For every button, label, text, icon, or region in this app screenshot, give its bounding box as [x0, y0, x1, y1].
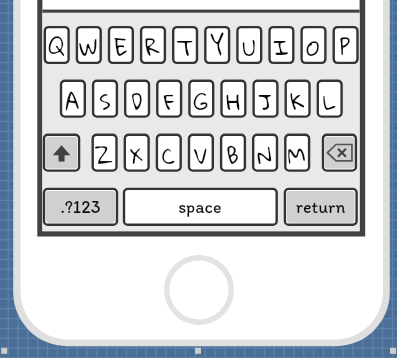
button[interactable]: J — [252, 80, 278, 118]
button[interactable]: Numbers and symbols — [43, 188, 118, 226]
button[interactable]: X — [124, 134, 150, 172]
button[interactable]: Y — [204, 26, 230, 64]
button[interactable]: L — [317, 80, 343, 118]
button[interactable]: E — [108, 26, 134, 64]
button[interactable]: C — [156, 134, 182, 172]
button[interactable]: A — [60, 80, 86, 118]
button[interactable]: W — [76, 26, 102, 64]
button[interactable]: B — [220, 134, 246, 172]
button[interactable]: D — [124, 80, 150, 118]
button[interactable]: Backspace — [322, 134, 357, 172]
button[interactable]: Space — [123, 188, 278, 226]
button[interactable]: S — [92, 80, 118, 118]
button[interactable]: H — [220, 80, 246, 118]
button[interactable]: R — [140, 26, 166, 64]
button[interactable]: K — [284, 80, 310, 118]
button[interactable]: Shift — [43, 134, 81, 172]
button[interactable]: Z — [92, 134, 118, 172]
button[interactable]: Return — [284, 188, 358, 226]
button[interactable]: G — [188, 80, 214, 118]
button[interactable]: V — [188, 134, 214, 172]
button[interactable]: O — [300, 26, 326, 64]
button[interactable]: I — [268, 26, 294, 64]
button[interactable]: T — [172, 26, 198, 64]
button[interactable]: P — [333, 26, 359, 64]
button[interactable]: U — [236, 26, 262, 64]
button[interactable]: N — [252, 134, 278, 172]
button[interactable]: F — [156, 80, 182, 118]
button[interactable]: M — [284, 134, 310, 172]
button[interactable]: Q — [44, 26, 70, 64]
